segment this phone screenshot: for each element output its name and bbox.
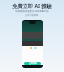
staticText: 立即下載體驗	[25, 14, 39, 17]
button[interactable]: 立即體驗	[24, 62, 41, 65]
staticText: 智能運算快速產生你的專屬內容	[15, 10, 49, 13]
staticText: 免費立即 AI 體驗	[12, 2, 52, 9]
staticText: 立即體驗	[29, 62, 37, 65]
button[interactable]: App preview	[22, 20, 43, 68]
